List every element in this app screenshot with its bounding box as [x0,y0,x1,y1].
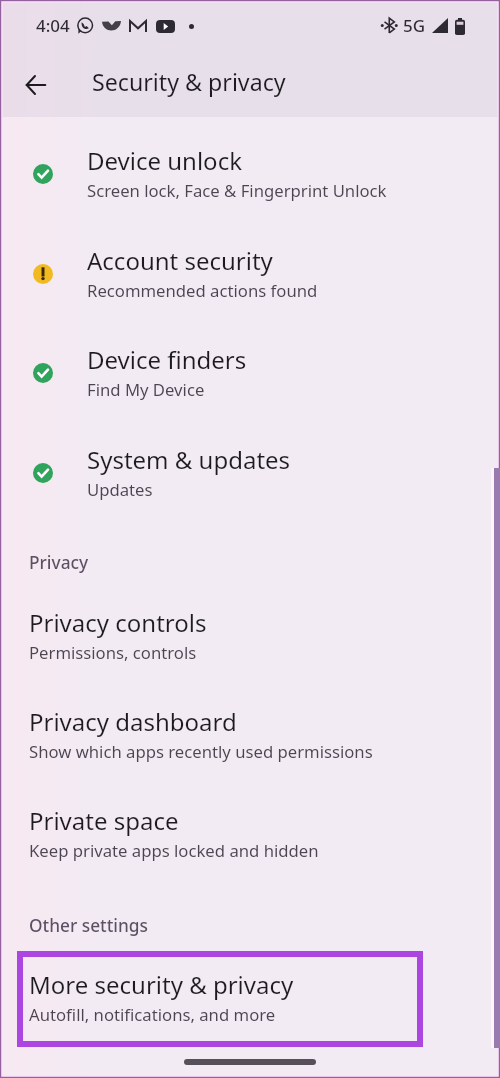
staticText: Autofill, notifications, and more [29,1003,276,1026]
button[interactable]: Device unlock [0,140,500,239]
staticText: Show which apps recently used permission… [29,740,373,763]
staticText: Keep private apps locked and hidden [29,839,319,862]
staticText: Privacy dashboard [29,705,237,738]
staticText: Recommended actions found [87,279,318,302]
button[interactable]: Private space [0,800,500,892]
staticText: Other settings [29,914,149,938]
staticText: Privacy [29,551,89,575]
button[interactable]: Back [12,61,59,108]
button[interactable]: Account security [0,240,500,339]
staticText: Account security [87,244,273,277]
staticText: Private space [29,804,179,837]
staticText: Device unlock [87,144,242,177]
staticText: Privacy controls [29,606,207,639]
button[interactable]: Privacy dashboard [0,701,500,793]
staticText: 4:04 [36,14,70,37]
staticText: Permissions, controls [29,641,197,664]
button[interactable]: Privacy controls [0,602,500,694]
staticText: System & updates [87,443,291,476]
staticText: Find My Device [87,378,205,401]
staticText: Updates [87,478,153,501]
staticText: Screen lock, Face & Fingerprint Unlock [87,179,387,202]
button[interactable]: Device finders [0,339,500,438]
staticText: 5G [403,14,426,37]
button[interactable]: More security & privacy [17,951,423,1047]
button[interactable]: System & updates [0,439,500,538]
staticText: Device finders [87,343,247,376]
staticText: Security & privacy [92,66,286,98]
staticText: More security & privacy [29,968,294,1001]
